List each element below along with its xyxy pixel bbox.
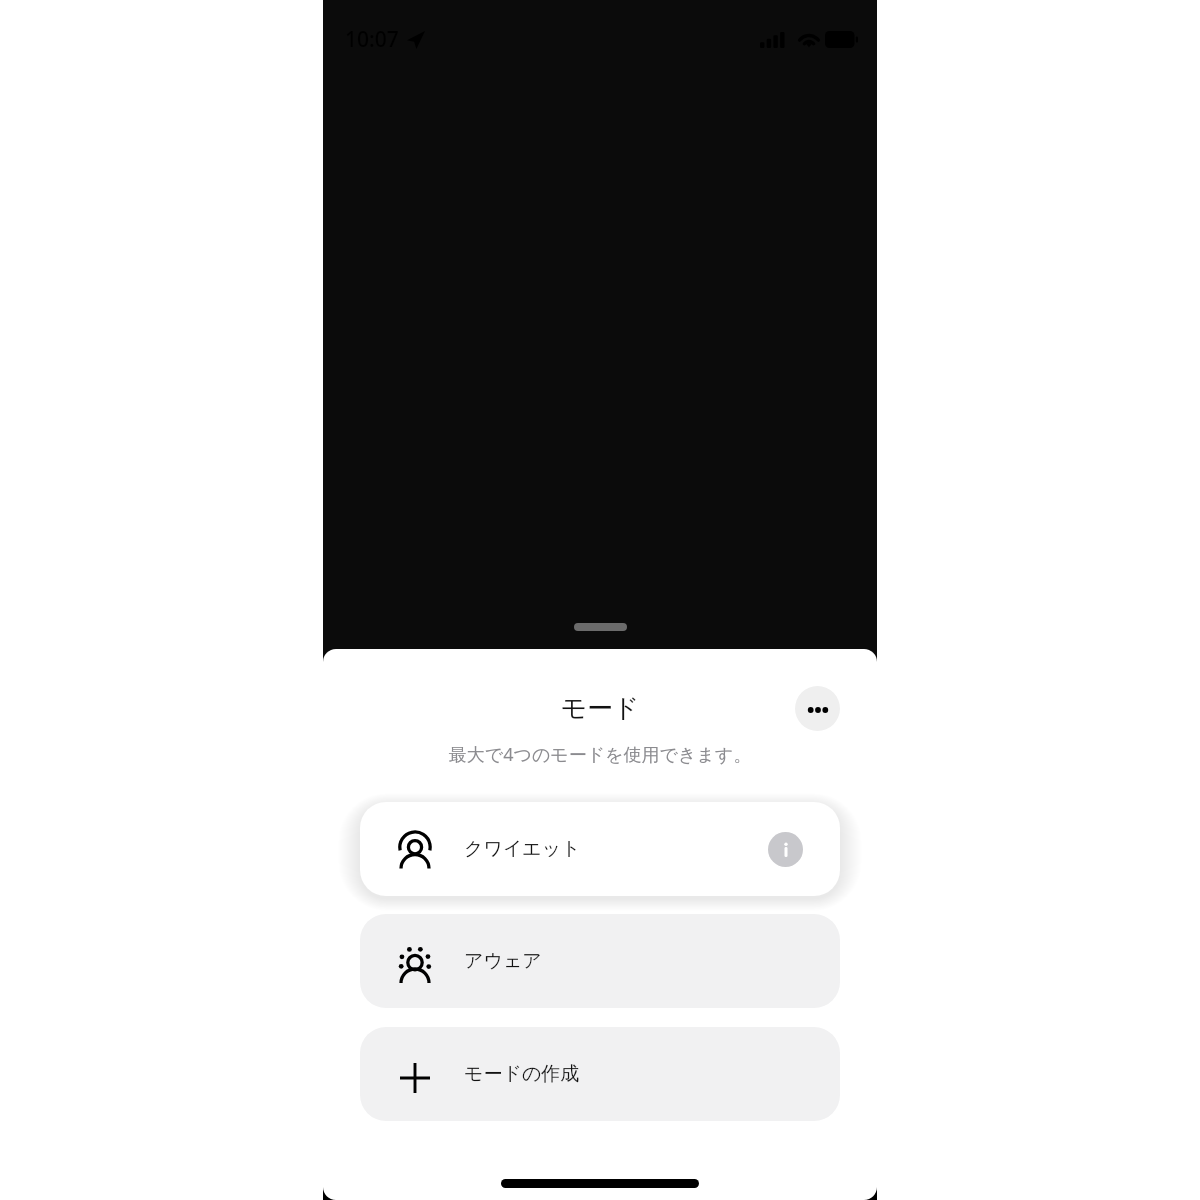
staticText: 10:07 xyxy=(345,25,399,54)
staticText: 最大で4つのモードを使用できます。 xyxy=(323,742,877,767)
button[interactable]: More options xyxy=(795,686,840,731)
button[interactable]: Info xyxy=(768,832,803,867)
button[interactable]: アウェア xyxy=(360,914,840,1008)
staticText: アウェア xyxy=(464,949,542,973)
staticText: モードの作成 xyxy=(464,1062,580,1086)
button[interactable]: クワイエット xyxy=(360,802,840,896)
staticText: クワイエット xyxy=(464,837,581,861)
staticText: モード xyxy=(323,692,877,725)
button[interactable]: モードの作成 xyxy=(360,1027,840,1121)
